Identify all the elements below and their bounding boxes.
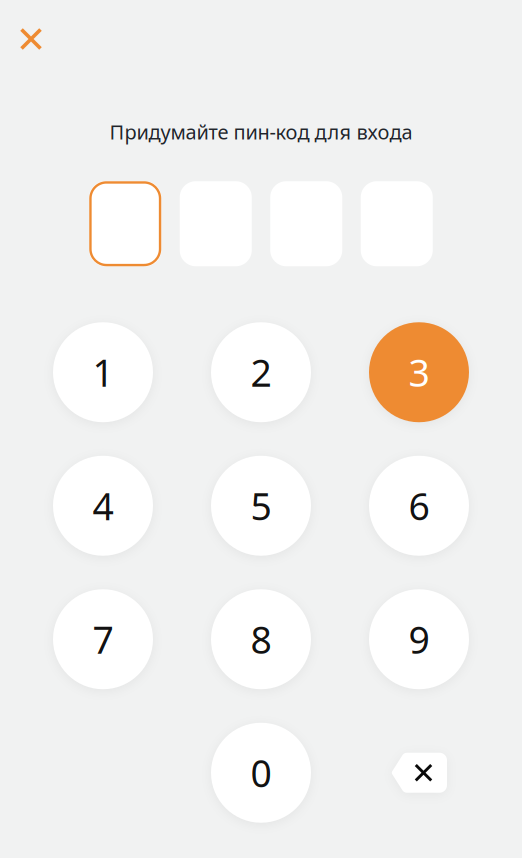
button[interactable]: Удалить — [369, 723, 469, 823]
staticText: 0 — [250, 747, 271, 798]
button[interactable]: 4 — [53, 456, 153, 556]
staticText: 6 — [408, 480, 429, 531]
button[interactable]: Закрыть — [9, 17, 53, 61]
staticText: 1 — [92, 347, 113, 398]
button[interactable]: 6 — [369, 456, 469, 556]
button[interactable]: 0 — [211, 723, 311, 823]
staticText: 7 — [92, 614, 113, 665]
button[interactable]: 7 — [53, 589, 153, 689]
staticText: 9 — [408, 614, 429, 665]
button[interactable]: 8 — [211, 589, 311, 689]
staticText: Придумайте пин-код для входа — [109, 118, 412, 145]
staticText: 4 — [92, 480, 113, 531]
staticText: 2 — [250, 347, 271, 398]
button[interactable]: 3 — [369, 322, 469, 422]
staticText: 3 — [408, 347, 429, 398]
button[interactable]: 5 — [211, 456, 311, 556]
staticText: 8 — [250, 614, 271, 665]
button[interactable]: 1 — [53, 322, 153, 422]
staticText: 5 — [250, 480, 271, 531]
button[interactable]: 2 — [211, 322, 311, 422]
button[interactable]: 9 — [369, 589, 469, 689]
